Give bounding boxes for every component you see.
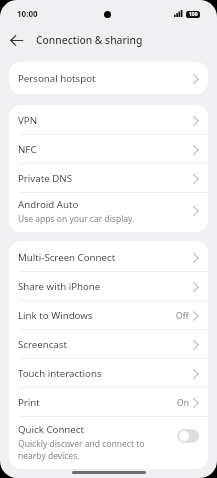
staticText: Use apps on your car display. <box>18 213 135 225</box>
staticText: Connection & sharing <box>36 33 143 47</box>
button[interactable]: Multi-Screen Connect <box>9 243 208 272</box>
button[interactable]: Link to Windows <box>9 301 208 330</box>
staticText: 100 <box>189 11 198 18</box>
staticText: Link to Windows <box>18 309 93 322</box>
staticText: Quickly discover and connect to nearby d… <box>18 438 145 462</box>
button[interactable]: Print <box>9 388 208 417</box>
button[interactable]: Quick Connect <box>9 417 208 469</box>
button[interactable]: Share with iPhone <box>9 272 208 301</box>
button[interactable]: Touch interactions <box>9 359 208 388</box>
staticText: Private DNS <box>18 172 72 185</box>
staticText: 10:00 <box>17 8 38 19</box>
button[interactable]: VPN <box>9 106 208 135</box>
staticText: Print <box>18 396 40 409</box>
staticText: VPN <box>18 114 38 127</box>
staticText: NFC <box>18 143 37 156</box>
staticText: On <box>177 397 189 409</box>
button[interactable]: Quick Connect toggle <box>177 429 199 443</box>
staticText: Android Auto <box>18 198 79 211</box>
button[interactable]: Screencast <box>9 330 208 359</box>
staticText: Multi-Screen Connect <box>18 251 116 264</box>
staticText: Quick Connect <box>18 423 84 436</box>
button[interactable]: Personal hotspot <box>9 63 208 94</box>
staticText: Share with iPhone <box>18 280 101 293</box>
staticText: Touch interactions <box>18 367 102 380</box>
staticText: Off <box>176 310 189 322</box>
staticText: Personal hotspot <box>18 72 96 85</box>
button[interactable]: Android Auto <box>9 193 208 232</box>
staticText: Screencast <box>18 338 67 351</box>
button[interactable]: NFC <box>9 135 208 164</box>
button[interactable]: Back <box>5 29 27 51</box>
button[interactable]: Private DNS <box>9 164 208 193</box>
